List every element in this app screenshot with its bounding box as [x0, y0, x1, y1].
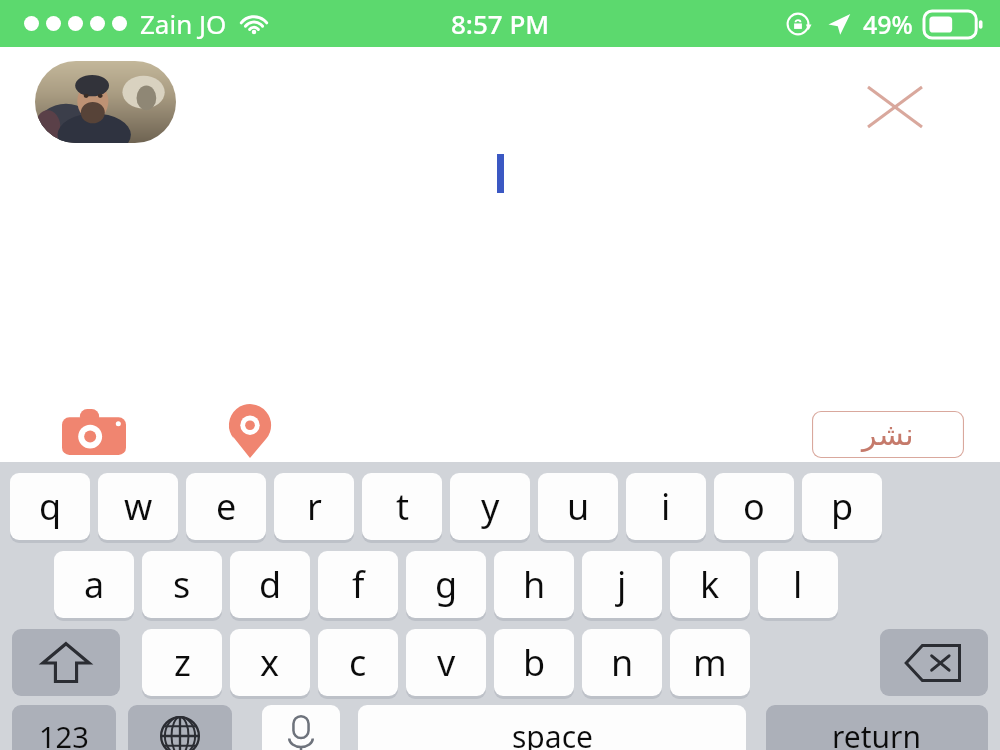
- staticText: Zain JO: [140, 6, 227, 41]
- staticText: k: [700, 560, 720, 609]
- staticText: space: [512, 716, 593, 750]
- button[interactable]: a: [54, 551, 134, 618]
- staticText: d: [259, 560, 282, 609]
- button[interactable]: e: [186, 473, 266, 540]
- staticText: q: [39, 482, 62, 531]
- staticText: a: [84, 560, 105, 609]
- staticText: l: [793, 560, 803, 609]
- button[interactable]: i: [626, 473, 706, 540]
- staticText: r: [307, 482, 322, 531]
- staticText: u: [567, 482, 590, 531]
- staticText: e: [216, 482, 237, 531]
- button[interactable]: space: [358, 705, 746, 750]
- staticText: x: [260, 638, 280, 687]
- staticText: z: [174, 638, 191, 687]
- button[interactable]: Dictation: [262, 705, 340, 750]
- staticText: 49%: [863, 7, 913, 41]
- button[interactable]: p: [802, 473, 882, 540]
- button[interactable]: Backspace: [880, 629, 988, 696]
- button[interactable]: o: [714, 473, 794, 540]
- button[interactable]: h: [494, 551, 574, 618]
- button[interactable]: s: [142, 551, 222, 618]
- staticText: v: [437, 638, 456, 687]
- staticText: o: [743, 482, 765, 531]
- staticText: نشر: [862, 417, 914, 452]
- button[interactable]: b: [494, 629, 574, 696]
- staticText: return: [832, 716, 922, 750]
- staticText: j: [617, 560, 627, 609]
- button[interactable]: q: [10, 473, 90, 540]
- button[interactable]: d: [230, 551, 310, 618]
- staticText: n: [611, 638, 634, 687]
- staticText: h: [523, 560, 546, 609]
- staticText: t: [396, 482, 409, 531]
- button[interactable]: n: [582, 629, 662, 696]
- button[interactable]: m: [670, 629, 750, 696]
- button[interactable]: t: [362, 473, 442, 540]
- button[interactable]: Add location: [208, 402, 292, 462]
- button[interactable]: نشر: [812, 411, 964, 458]
- button[interactable]: Profile photo: [35, 61, 176, 143]
- staticText: 123: [39, 717, 89, 750]
- button[interactable]: Add photo: [52, 402, 136, 462]
- button[interactable]: Switch keyboard language: [128, 705, 232, 750]
- button[interactable]: f: [318, 551, 398, 618]
- button[interactable]: l: [758, 551, 838, 618]
- staticText: i: [661, 482, 671, 531]
- staticText: m: [693, 638, 727, 687]
- staticText: b: [523, 638, 546, 687]
- staticText: p: [831, 482, 854, 531]
- button[interactable]: Close: [850, 65, 940, 149]
- button[interactable]: k: [670, 551, 750, 618]
- staticText: s: [173, 560, 191, 609]
- staticText: y: [481, 482, 500, 531]
- button[interactable]: return: [766, 705, 988, 750]
- staticText: c: [349, 638, 367, 687]
- staticText: w: [124, 482, 153, 531]
- button[interactable]: w: [98, 473, 178, 540]
- staticText: g: [435, 560, 458, 609]
- staticText: 8:57 PM: [451, 6, 550, 41]
- button[interactable]: Shift: [12, 629, 120, 696]
- button[interactable]: c: [318, 629, 398, 696]
- button[interactable]: u: [538, 473, 618, 540]
- button[interactable]: z: [142, 629, 222, 696]
- staticText: f: [352, 560, 365, 609]
- button[interactable]: y: [450, 473, 530, 540]
- button[interactable]: x: [230, 629, 310, 696]
- button[interactable]: g: [406, 551, 486, 618]
- button[interactable]: 123: [12, 705, 116, 750]
- button[interactable]: r: [274, 473, 354, 540]
- button[interactable]: j: [582, 551, 662, 618]
- button[interactable]: v: [406, 629, 486, 696]
